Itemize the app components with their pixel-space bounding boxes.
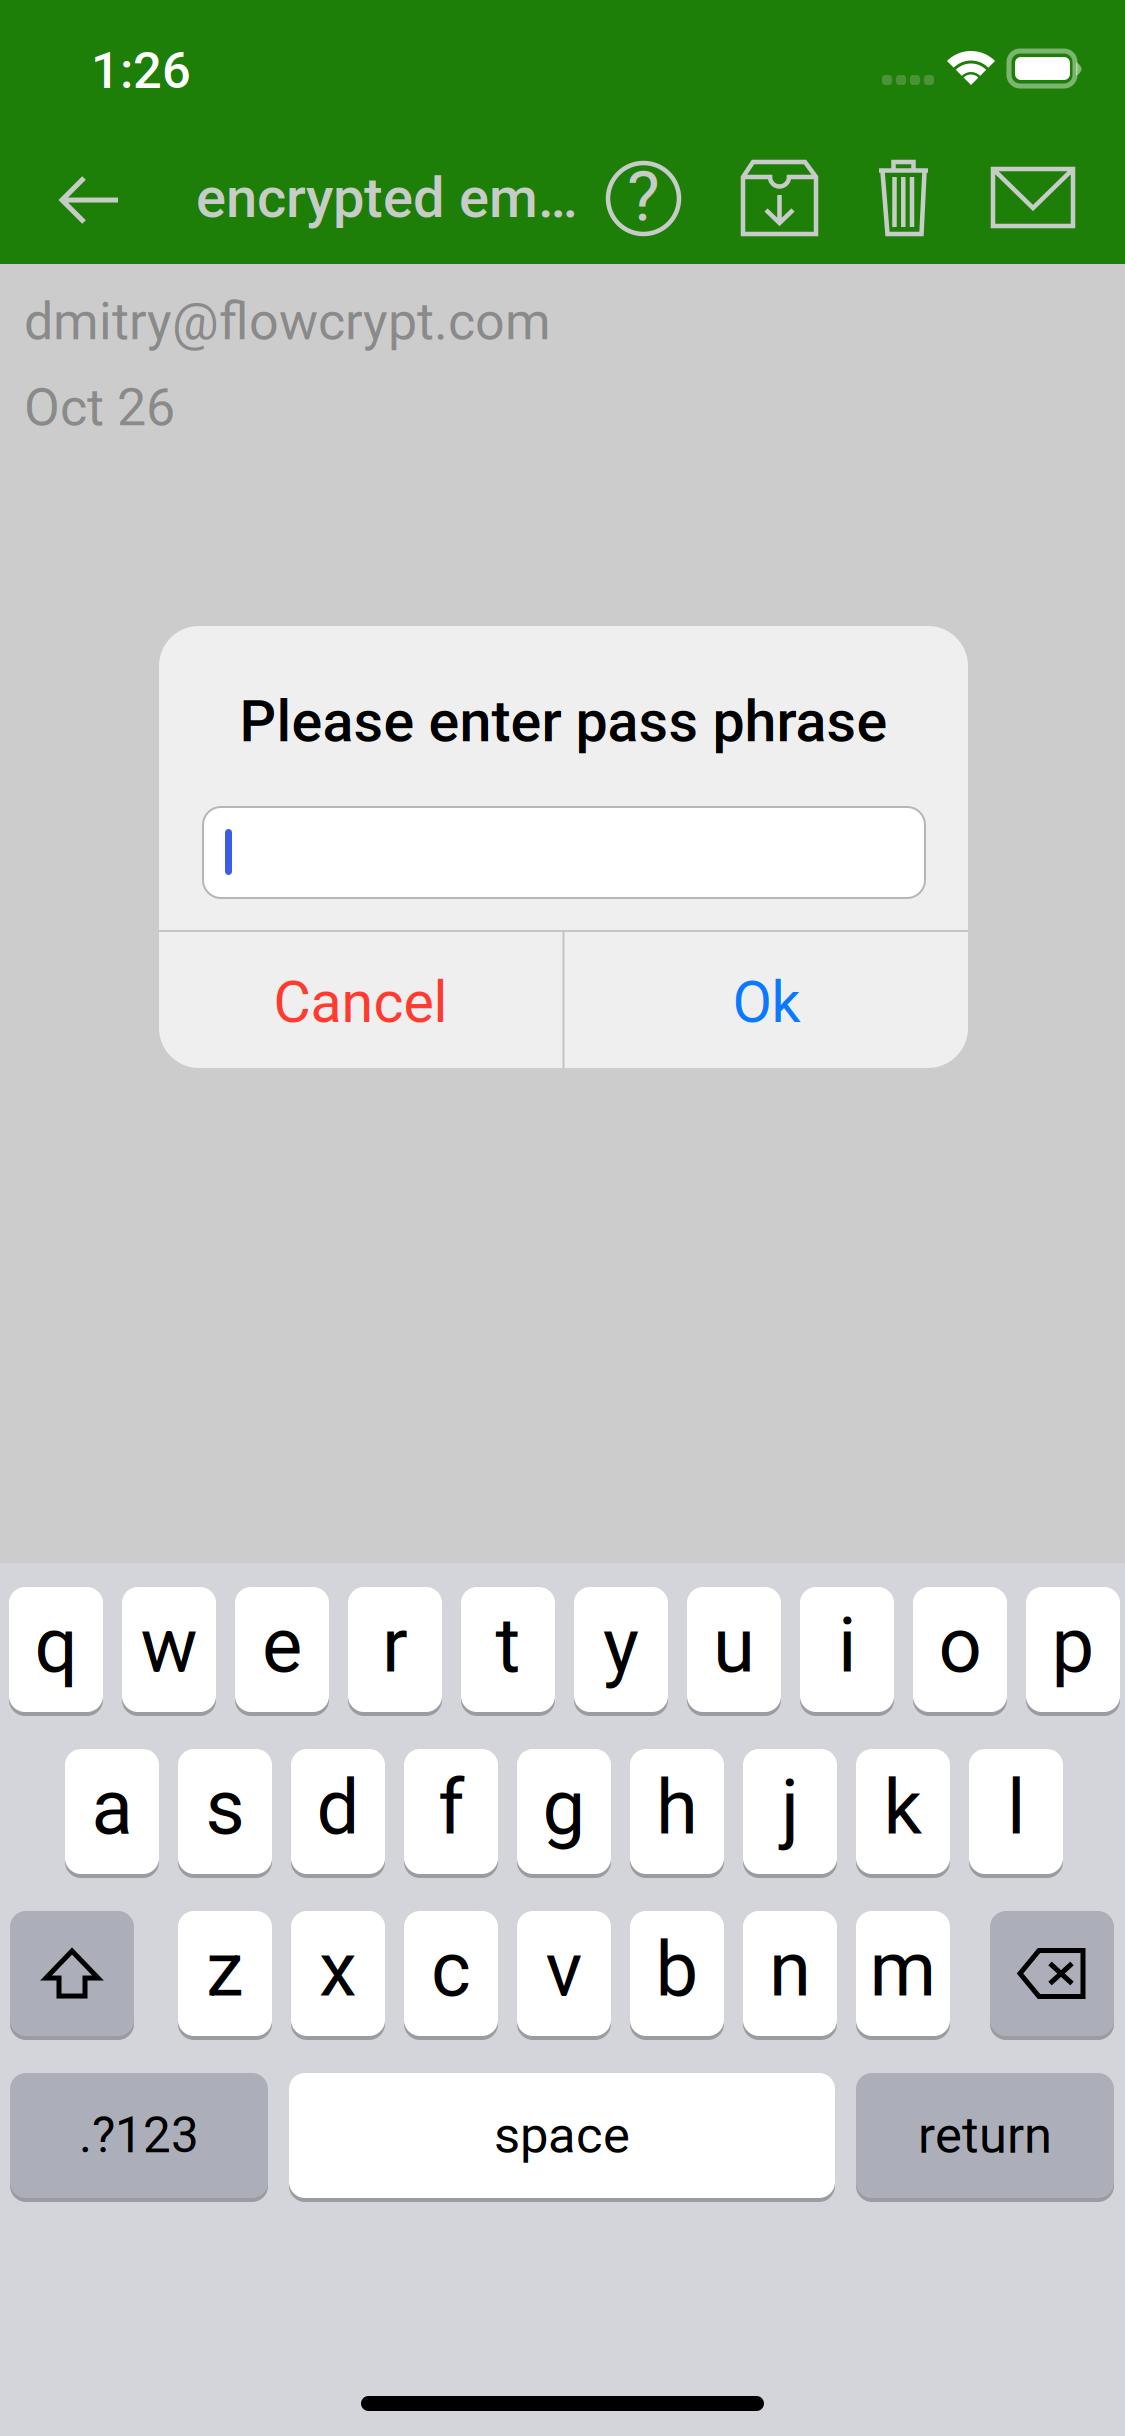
button[interactable]: j <box>743 1749 837 1874</box>
staticText: ? <box>627 156 660 237</box>
button[interactable]: u <box>687 1587 781 1712</box>
staticText: i <box>838 1601 856 1690</box>
staticText: h <box>656 1763 698 1852</box>
staticText: c <box>431 1925 471 2014</box>
button[interactable]: x <box>291 1911 385 2036</box>
button[interactable]: c <box>404 1911 498 2036</box>
button[interactable]: return <box>856 2073 1114 2198</box>
button[interactable]: a <box>65 1749 159 1874</box>
button[interactable]: Delete <box>858 140 950 256</box>
button[interactable]: r <box>348 1587 442 1712</box>
staticText: t <box>495 1601 520 1690</box>
staticText: Cancel <box>273 969 447 1036</box>
staticText: v <box>545 1925 582 2014</box>
staticText: f <box>438 1763 464 1852</box>
staticText: p <box>1051 1601 1094 1690</box>
button[interactable]: g <box>517 1749 611 1874</box>
staticText: Ok <box>732 969 800 1036</box>
button[interactable]: y <box>574 1587 668 1712</box>
button[interactable]: w <box>122 1587 216 1712</box>
button[interactable]: q <box>9 1587 103 1712</box>
button[interactable]: k <box>856 1749 950 1874</box>
staticText: Oct 26 <box>24 377 175 438</box>
staticText: b <box>655 1925 698 2014</box>
button[interactable]: t <box>461 1587 555 1712</box>
staticText: dmitry@flowcrypt.com <box>24 291 551 352</box>
staticText: q <box>34 1601 77 1690</box>
staticText: k <box>883 1763 922 1852</box>
staticText: g <box>542 1763 585 1852</box>
staticText: .?123 <box>79 2107 199 2164</box>
button[interactable]: Help <box>590 145 697 252</box>
button[interactable]: .?123 <box>10 2073 268 2198</box>
staticText: e <box>262 1601 302 1690</box>
button[interactable]: Ok <box>565 934 968 1071</box>
button[interactable]: h <box>630 1749 724 1874</box>
staticText: r <box>382 1601 408 1690</box>
staticText: n <box>769 1925 811 2014</box>
button[interactable]: v <box>517 1911 611 2036</box>
staticText: x <box>319 1925 357 2014</box>
button[interactable]: e <box>235 1587 329 1712</box>
button[interactable]: p <box>1026 1587 1120 1712</box>
button[interactable]: i <box>800 1587 894 1712</box>
button[interactable]: n <box>743 1911 837 2036</box>
button[interactable] <box>10 1911 134 2036</box>
staticText: s <box>205 1763 244 1852</box>
staticText: d <box>316 1763 359 1852</box>
staticText: space <box>494 2106 630 2165</box>
staticText: m <box>869 1925 936 2014</box>
staticText: return <box>918 2106 1052 2165</box>
staticText: encrypted em… <box>196 165 578 231</box>
staticText: l <box>1007 1763 1025 1852</box>
button[interactable]: l <box>969 1749 1063 1874</box>
button[interactable]: m <box>856 1911 950 2036</box>
button[interactable]: s <box>178 1749 272 1874</box>
staticText: y <box>603 1601 639 1690</box>
button[interactable]: b <box>630 1911 724 2036</box>
button[interactable]: Archive <box>722 141 837 255</box>
button[interactable] <box>990 1911 1114 2036</box>
button[interactable]: Cancel <box>159 934 562 1071</box>
staticText: z <box>206 1925 244 2014</box>
button[interactable]: d <box>291 1749 385 1874</box>
button[interactable]: z <box>178 1911 272 2036</box>
button[interactable]: Back <box>40 137 140 263</box>
staticText: w <box>140 1601 197 1690</box>
staticText: u <box>713 1601 755 1690</box>
button[interactable]: space <box>289 2073 835 2198</box>
staticText: j <box>781 1763 799 1852</box>
staticText: a <box>91 1763 132 1852</box>
staticText: o <box>938 1601 981 1690</box>
staticText: Please enter pass phrase <box>239 688 887 755</box>
staticText: 1:26 <box>91 41 191 100</box>
button[interactable]: o <box>913 1587 1007 1712</box>
button[interactable]: f <box>404 1749 498 1874</box>
button[interactable]: Mark unread <box>972 148 1094 247</box>
